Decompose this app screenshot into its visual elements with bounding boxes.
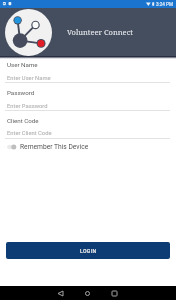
button[interactable]: Remember This Device: [0, 141, 176, 152]
staticText: 3:24 PM: [156, 2, 173, 7]
staticText: Volunteer Connect: [67, 27, 133, 37]
staticText: Enter Password: [7, 103, 48, 110]
staticText: Client Code: [7, 117, 39, 124]
staticText: User Name: [7, 61, 38, 68]
button[interactable]: LOGIN: [6, 242, 170, 259]
staticText: LOGIN: [80, 248, 97, 254]
button[interactable]: Home: [77, 286, 98, 300]
other: App logo: [5, 9, 52, 56]
staticText: Remember This Device: [20, 143, 89, 151]
staticText: Password: [7, 89, 35, 96]
button[interactable]: Recent apps: [104, 286, 125, 300]
button[interactable]: Back: [50, 286, 71, 300]
staticText: Enter Client Code: [7, 130, 52, 137]
staticText: Enter User Name: [7, 75, 51, 82]
